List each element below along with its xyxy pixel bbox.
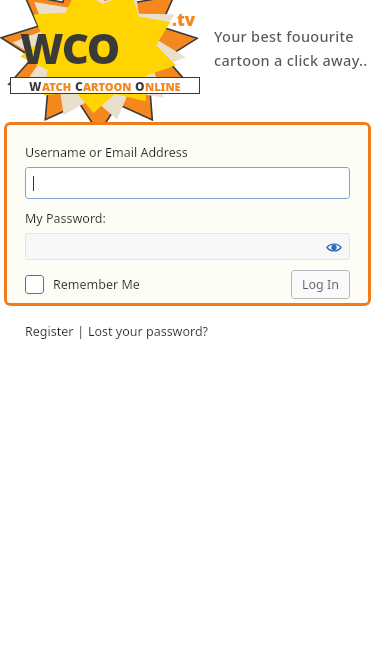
staticText: NLINE <box>145 79 181 94</box>
staticText: .tv <box>172 8 196 31</box>
button[interactable]: Lost your password? <box>88 323 209 340</box>
staticText: ATCH <box>42 79 72 94</box>
staticText: Remember Me <box>53 276 140 293</box>
staticText: My Password: <box>25 210 106 227</box>
button[interactable] <box>25 167 350 199</box>
button[interactable]: Log In <box>291 270 350 299</box>
staticText: cartoon a click away.. <box>214 50 368 70</box>
button[interactable]: Remember Me <box>25 275 140 294</box>
staticText: C <box>75 78 83 94</box>
button[interactable]: Show password <box>326 239 342 255</box>
staticText: Log In <box>302 276 340 293</box>
staticText: Username or Email Address <box>25 144 188 161</box>
button[interactable]: Show password <box>25 233 350 260</box>
staticText <box>72 79 75 94</box>
staticText: | <box>74 323 88 340</box>
button[interactable]: Register <box>25 323 74 340</box>
staticText: O <box>135 78 145 94</box>
staticText <box>132 79 135 94</box>
staticText: WCO <box>20 19 119 76</box>
staticText: Your best fouourite <box>214 26 354 46</box>
staticText: ARTOON <box>83 79 132 94</box>
staticText: W <box>29 78 42 94</box>
